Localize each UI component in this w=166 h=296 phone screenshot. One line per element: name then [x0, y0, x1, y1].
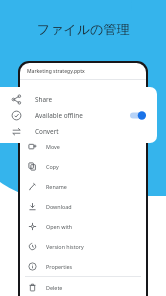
staticText: Delete — [46, 284, 63, 291]
staticText: Rename — [46, 183, 67, 190]
button[interactable]: Convert — [0, 123, 157, 139]
button[interactable]: Version history — [20, 236, 146, 256]
staticText: Convert — [35, 127, 59, 136]
staticText: Move — [46, 143, 60, 150]
staticText: Available offline — [35, 111, 83, 120]
button[interactable]: Available offline — [0, 107, 157, 123]
button[interactable]: Copy — [20, 156, 146, 176]
button[interactable]: Properties — [20, 256, 146, 276]
staticText: ファイルの管理 — [37, 21, 130, 37]
button[interactable]: Open with — [20, 216, 146, 236]
staticText: Open with — [46, 223, 73, 230]
staticText: Marketing strategy.pptx — [27, 68, 85, 75]
staticText: Version history — [46, 243, 84, 250]
staticText: Download — [46, 203, 72, 210]
button[interactable]: Move — [20, 136, 146, 156]
staticText: Copy — [46, 163, 59, 170]
button[interactable]: Download — [20, 196, 146, 216]
other: Available offline — [130, 111, 146, 120]
staticText: Share — [35, 95, 53, 104]
button[interactable]: Share — [0, 91, 157, 107]
staticText: Properties — [46, 263, 73, 270]
button[interactable]: Rename — [20, 176, 146, 196]
button[interactable]: Delete — [20, 277, 146, 296]
